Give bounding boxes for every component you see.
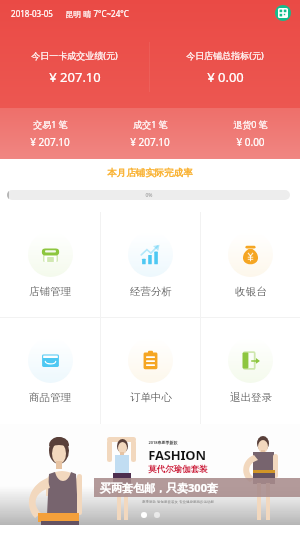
button[interactable]: 退货0 笔 bbox=[200, 108, 300, 159]
button[interactable]: 经营分析 bbox=[101, 212, 200, 317]
staticText: 退出登录 bbox=[230, 391, 272, 404]
button[interactable]: 2018春夏季新款 bbox=[0, 424, 300, 533]
staticText: ¥ 207.10 bbox=[30, 135, 70, 149]
staticText: 商品管理 bbox=[29, 391, 71, 404]
button[interactable]: 今日店铺总指标(元) bbox=[150, 26, 300, 108]
staticText: 今日店铺总指标(元) bbox=[186, 49, 264, 61]
staticText: 2018-03-05 bbox=[11, 8, 53, 19]
staticText: 莫代尔瑜伽套装 bbox=[148, 464, 208, 475]
button[interactable]: 退出登录 bbox=[201, 318, 300, 424]
button[interactable]: 店铺管理 bbox=[0, 212, 100, 317]
staticText: 今日一卡成交业绩(元) bbox=[31, 49, 118, 61]
staticText: ¥ 207.10 bbox=[130, 135, 170, 149]
button[interactable]: 交易1 笔 bbox=[0, 108, 100, 159]
staticText: 经营分析 bbox=[130, 285, 172, 298]
staticText: 夏季新款 瑜伽服套装女 专业健身服跑步运动服 bbox=[142, 499, 214, 504]
button[interactable]: 收银台 bbox=[201, 212, 300, 317]
button[interactable]: 0% bbox=[7, 190, 290, 200]
staticText: 订单中心 bbox=[130, 391, 172, 404]
staticText: 交易1 笔 bbox=[33, 118, 68, 130]
staticText: 退货0 笔 bbox=[233, 118, 268, 130]
staticText: FASHION bbox=[148, 446, 206, 464]
button[interactable]: 扫一扫 bbox=[275, 5, 291, 21]
staticText: 收银台 bbox=[235, 285, 267, 298]
staticText: ¥ 0.00 bbox=[236, 135, 265, 149]
staticText: 店铺管理 bbox=[29, 285, 71, 298]
staticText: 2018春夏季新款 bbox=[148, 440, 178, 445]
staticText: 昆明 晴 7°C~24°C bbox=[65, 8, 129, 19]
staticText: 成交1 笔 bbox=[133, 118, 168, 130]
staticText: 0% bbox=[145, 192, 153, 199]
button[interactable]: 今日一卡成交业绩(元) bbox=[0, 26, 149, 108]
staticText: ¥ 0.00 bbox=[207, 68, 244, 86]
button[interactable]: 商品管理 bbox=[0, 318, 100, 424]
staticText: 本月店铺实际完成率 bbox=[0, 167, 300, 179]
button[interactable]: 订单中心 bbox=[101, 318, 200, 424]
staticText: 买两套包邮，只卖300套 bbox=[100, 480, 218, 495]
staticText: ¥ 207.10 bbox=[49, 68, 101, 86]
button[interactable]: 成交1 笔 bbox=[100, 108, 200, 159]
